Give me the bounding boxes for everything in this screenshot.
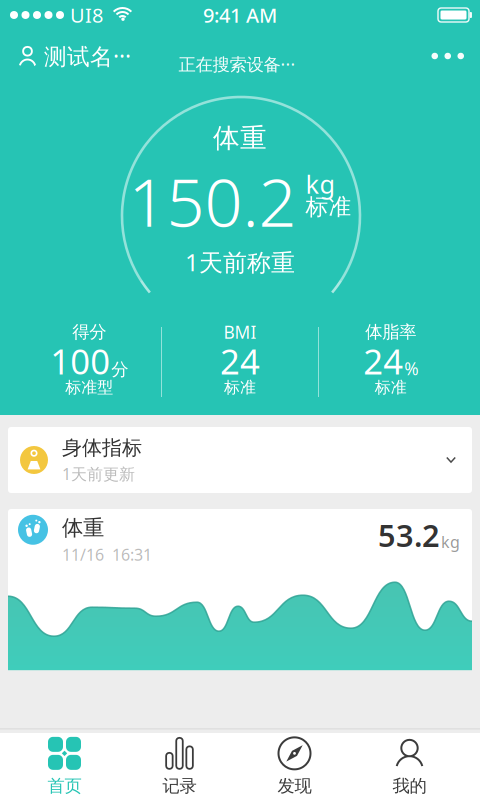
staticText: 150.2 (128, 157, 296, 245)
staticText: 发现 (277, 775, 311, 797)
staticText: 体重 (62, 515, 104, 541)
button[interactable]: 测试名··· (0, 41, 131, 71)
staticText: 体重 (213, 122, 267, 154)
staticText: 我的 (392, 775, 426, 797)
staticText: 1天前更新 (62, 463, 135, 484)
staticText: 体脂率 (365, 321, 416, 343)
staticText: 11/16 16:31 (62, 544, 152, 565)
staticText: 首页 (47, 775, 81, 797)
staticText: 得分 (72, 321, 106, 343)
button[interactable]: 身体指标 (8, 427, 472, 493)
staticText: 1天前称重 (185, 246, 295, 278)
staticText: 24 (220, 338, 260, 384)
staticText: 标准 (375, 378, 407, 397)
staticText: 100 (50, 338, 110, 384)
staticText: kg (305, 167, 335, 201)
staticText: 9:41 AM (203, 2, 277, 28)
staticText: UI8 (70, 2, 103, 28)
staticText: 标准 (305, 193, 351, 221)
staticText: BMI (223, 320, 256, 343)
staticText: 记录 (162, 775, 196, 797)
staticText: % (404, 357, 418, 380)
button[interactable]: 记录 (122, 737, 237, 797)
staticText: 测试名··· (44, 41, 131, 71)
button[interactable]: 发现 (237, 737, 352, 797)
button[interactable]: 体重 (8, 509, 472, 662)
staticText: kg (441, 531, 460, 552)
button[interactable]: 首页 (7, 737, 122, 797)
staticText: 身体指标 (62, 436, 142, 460)
staticText: 53.2 (378, 515, 440, 555)
staticText: 正在搜索设备··· (178, 52, 295, 75)
staticText: 标准 (224, 378, 256, 397)
button[interactable]: 我的 (352, 737, 467, 797)
staticText: 24 (363, 338, 403, 384)
staticText: 标准型 (65, 378, 113, 397)
button[interactable]: 更多 (431, 53, 480, 59)
staticText: 分 (111, 359, 128, 380)
